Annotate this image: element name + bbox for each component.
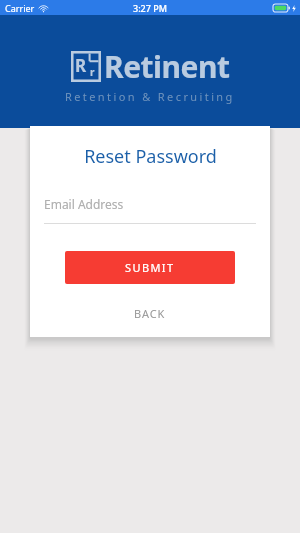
button[interactable]: SUBMIT [65, 251, 235, 284]
staticText: r [90, 65, 95, 79]
staticText: BACK [134, 306, 166, 321]
staticText: Carrier [5, 2, 35, 14]
staticText: Retention & Recruiting [65, 89, 235, 104]
button[interactable]: Email Address [44, 196, 256, 224]
staticText: Email Address [44, 196, 124, 212]
button[interactable]: BACK [95, 301, 205, 325]
staticText: R [75, 54, 87, 77]
staticText: SUBMIT [125, 260, 175, 275]
staticText: Retinent [104, 46, 230, 87]
staticText: 3:27 PM [133, 2, 167, 14]
staticText: Reset Password [84, 144, 217, 169]
